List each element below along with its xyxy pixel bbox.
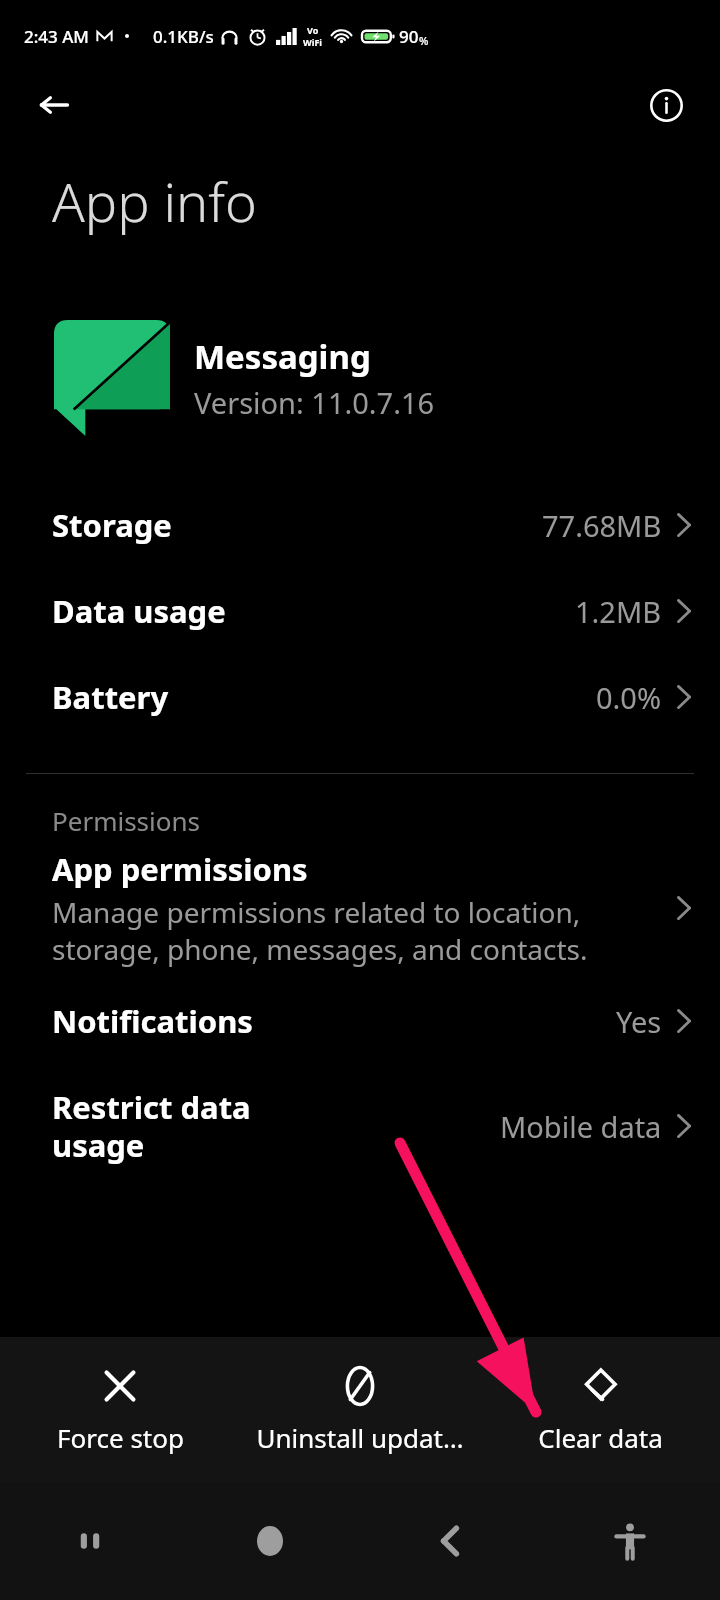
button[interactable]: Home xyxy=(180,1482,360,1600)
staticText: Battery xyxy=(52,676,596,718)
staticText: Notifications xyxy=(52,1000,616,1042)
button[interactable]: App details info xyxy=(642,81,690,129)
button[interactable]: Clear data xyxy=(480,1353,720,1467)
staticText: Messaging xyxy=(194,334,371,379)
staticText: 2:43 AM xyxy=(24,25,89,48)
staticText: App permissions xyxy=(52,848,308,890)
button[interactable]: Back xyxy=(360,1482,540,1600)
staticText: 90 xyxy=(399,25,419,48)
staticText: % xyxy=(419,33,429,48)
button[interactable]: Back xyxy=(30,81,78,129)
staticText: Clear data xyxy=(538,1420,663,1455)
staticText: 0.1KB/s xyxy=(153,25,214,48)
staticText: Force stop xyxy=(57,1420,184,1455)
staticText: App info xyxy=(52,164,257,238)
staticText: Version: 11.0.7.16 xyxy=(194,383,435,422)
staticText: 77.68MB xyxy=(542,506,662,545)
staticText: 1.2MB xyxy=(575,592,662,631)
staticText: Mobile data xyxy=(500,1107,662,1146)
button[interactable]: Notifications xyxy=(0,978,720,1064)
staticText: Data usage xyxy=(52,590,575,632)
button[interactable]: Force stop xyxy=(0,1353,240,1467)
staticText: Restrict data usage xyxy=(52,1086,500,1166)
button[interactable]: Uninstall updat… xyxy=(240,1353,480,1467)
button[interactable]: Recent apps xyxy=(0,1482,180,1600)
staticText: Vo xyxy=(307,24,319,36)
button[interactable]: Storage xyxy=(0,482,720,568)
button[interactable]: Data usage xyxy=(0,568,720,654)
staticText: Storage xyxy=(52,504,542,546)
button[interactable]: Battery xyxy=(0,654,720,740)
staticText: WiFi xyxy=(303,36,323,48)
staticText: Uninstall updat… xyxy=(256,1420,464,1455)
staticText: 0.0% xyxy=(596,678,662,717)
staticText: Permissions xyxy=(52,803,201,838)
staticText: Manage permissions related to location, … xyxy=(52,893,658,968)
staticText: Yes xyxy=(616,1002,662,1041)
button[interactable]: Accessibility menu xyxy=(540,1482,720,1600)
button[interactable]: Restrict data usage xyxy=(0,1064,720,1188)
button[interactable]: App permissions xyxy=(0,844,720,978)
